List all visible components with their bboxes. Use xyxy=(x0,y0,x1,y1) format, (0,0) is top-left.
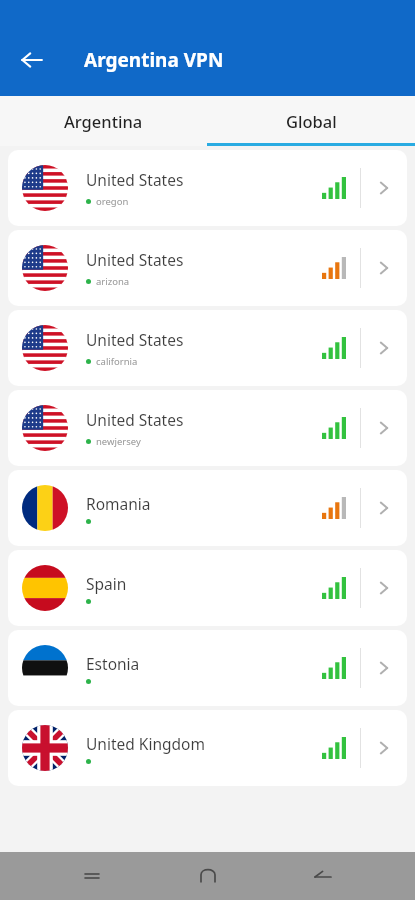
staticText: United States xyxy=(86,249,184,270)
staticText: United States xyxy=(86,169,184,190)
button[interactable]: United States xyxy=(8,150,407,226)
staticText: california xyxy=(96,355,138,368)
staticText: Argentina xyxy=(64,110,143,132)
button[interactable]: United Kingdom xyxy=(8,710,407,786)
button[interactable]: United States xyxy=(8,230,407,306)
staticText: newjersey xyxy=(96,435,141,448)
button[interactable]: United States xyxy=(8,310,407,386)
staticText: Global xyxy=(286,110,337,132)
staticText: Argentina VPN xyxy=(84,47,224,73)
staticText: Estonia xyxy=(86,653,140,674)
button[interactable]: Global xyxy=(207,96,415,146)
staticText: oregon xyxy=(96,195,129,208)
staticText: Spain xyxy=(86,573,127,594)
button[interactable]: United States xyxy=(8,390,407,466)
button[interactable]: Argentina xyxy=(0,96,207,146)
button[interactable]: Estonia xyxy=(8,630,407,706)
button[interactable]: Home xyxy=(184,852,232,900)
staticText: United Kingdom xyxy=(86,733,205,754)
staticText: Romania xyxy=(86,493,151,514)
button[interactable]: Back xyxy=(10,38,54,82)
button[interactable]: Recents xyxy=(68,852,116,900)
staticText: United States xyxy=(86,329,184,350)
button[interactable]: Spain xyxy=(8,550,407,626)
staticText: arizona xyxy=(96,275,130,288)
button[interactable]: Back xyxy=(299,852,347,900)
button[interactable]: Romania xyxy=(8,470,407,546)
staticText: United States xyxy=(86,409,184,430)
